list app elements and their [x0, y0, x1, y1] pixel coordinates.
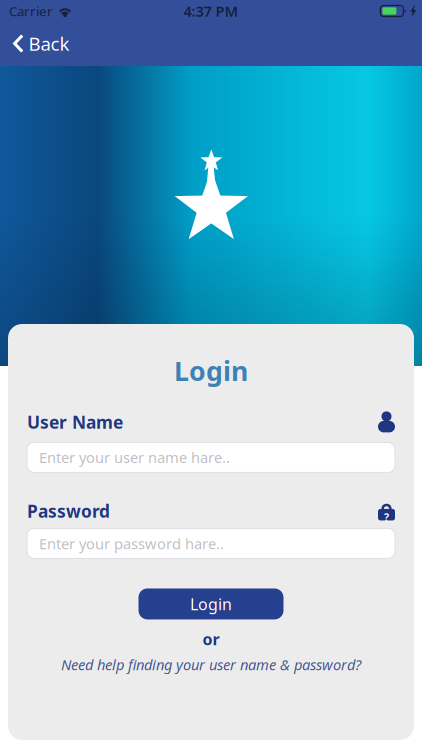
staticText: Need help finding your user name & passw…	[61, 655, 361, 674]
staticText: Login	[174, 353, 248, 388]
staticText: Enter your password hare..	[39, 534, 224, 553]
staticText: Carrier	[9, 2, 53, 20]
staticText: or	[202, 628, 219, 650]
button[interactable]: User name info	[378, 411, 395, 432]
staticText: Login	[190, 593, 232, 614]
staticText: Back	[29, 31, 70, 56]
staticText: Enter your user name hare..	[39, 448, 230, 467]
button[interactable]: Forgot password	[378, 501, 395, 520]
button[interactable]: Back	[0, 24, 82, 63]
staticText: ?	[384, 510, 389, 524]
staticText: Password	[27, 499, 110, 522]
button[interactable]: Need help finding your user name & passw…	[61, 655, 361, 674]
staticText: 4:37 PM	[183, 1, 238, 21]
staticText: User Name	[27, 410, 123, 433]
button[interactable]: Login	[138, 588, 283, 619]
